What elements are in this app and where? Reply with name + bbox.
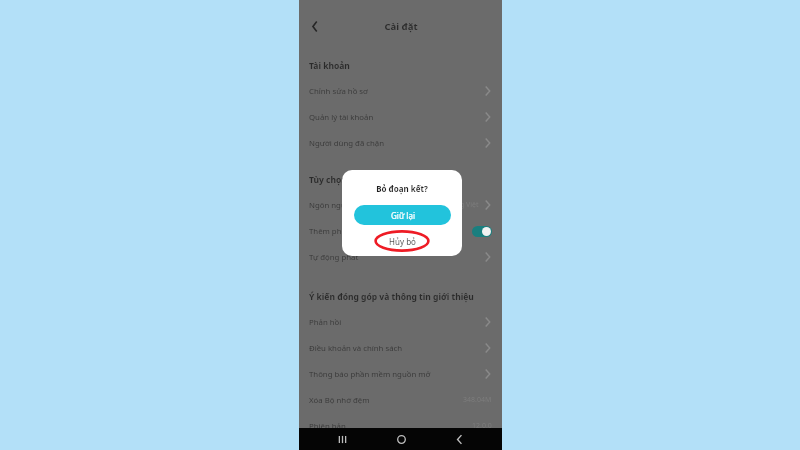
staticText: Người dùng đã chặn (309, 138, 385, 149)
staticText: Xóa Bộ nhớ đệm (309, 395, 370, 406)
staticText: Cài đặt (384, 20, 418, 33)
button[interactable]: Chỉnh sửa hồ sơ (299, 78, 502, 104)
staticText: 12.0.0 (472, 421, 492, 431)
staticText: 348.04M (463, 395, 492, 405)
staticText: Điều khoản và chính sách (309, 343, 403, 354)
staticText: Chỉnh sửa hồ sơ (309, 86, 368, 97)
button[interactable]: Giữ lại (354, 205, 451, 225)
staticText: Bỏ đoạn kết? (376, 183, 428, 194)
staticText: Tự động phát (309, 252, 359, 263)
button[interactable]: Phiên bản (299, 413, 502, 439)
button[interactable]: Thông báo phần mềm nguồn mở (299, 361, 502, 387)
button[interactable]: Back (444, 428, 474, 450)
button[interactable]: Ngôn ngữ (299, 192, 502, 218)
staticText: Thêm phụ đề (309, 226, 358, 237)
staticText: Giữ lại (391, 210, 415, 221)
button[interactable]: Quản lý tài khoản (299, 104, 502, 130)
button[interactable]: Điều khoản và chính sách (299, 335, 502, 361)
button[interactable]: Người dùng đã chặn (299, 130, 502, 156)
button[interactable]: Hủy bỏ (372, 229, 432, 253)
button[interactable]: Tự động phát (299, 244, 502, 270)
staticText: Tiếng Việt (446, 200, 479, 210)
button[interactable]: Back (304, 15, 326, 37)
button[interactable]: Home (386, 428, 416, 450)
staticText: Hủy bỏ (389, 236, 416, 247)
staticText: Thông báo phần mềm nguồn mở (309, 369, 431, 380)
button[interactable]: Thêm phụ đề (299, 218, 502, 244)
staticText: Tài khoản (309, 60, 350, 72)
staticText: Ngôn ngữ (309, 200, 347, 211)
staticText: Ý kiến đóng góp và thông tin giới thiệu (309, 291, 474, 303)
staticText: Phiên bản (309, 421, 346, 432)
button[interactable]: Xóa Bộ nhớ đệm (299, 387, 502, 413)
button[interactable]: Recent apps (327, 428, 357, 450)
button[interactable]: Toggle on (472, 226, 492, 237)
staticText: Quản lý tài khoản (309, 112, 374, 123)
staticText: Phản hồi (309, 317, 342, 328)
button[interactable]: Phản hồi (299, 309, 502, 335)
staticText: Tùy chọn (309, 174, 347, 186)
